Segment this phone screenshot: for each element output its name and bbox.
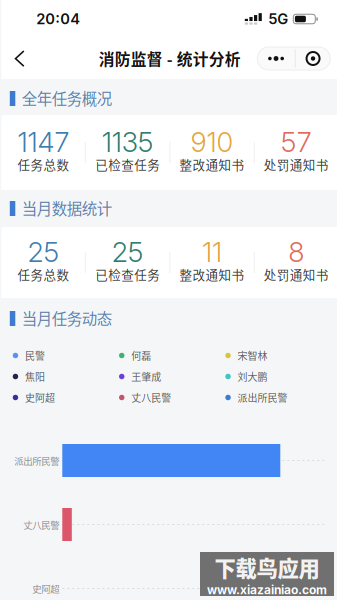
button[interactable]: More options <box>257 47 330 70</box>
staticText: 丈八民警 <box>23 518 59 531</box>
staticText: 任务总数 <box>17 265 69 283</box>
staticText: 处罚通知书 <box>264 155 329 173</box>
staticText: 刘大鹏 <box>238 369 268 384</box>
staticText: 8 <box>288 236 304 269</box>
staticText: 已检查任务 <box>95 155 160 173</box>
staticText: 焦阳 <box>25 369 45 384</box>
staticText: 25 <box>27 236 59 269</box>
staticText: www.xiazainiao.com <box>207 583 327 597</box>
staticText: 派出所民警 <box>238 390 288 405</box>
staticText: 当月数据统计 <box>22 197 112 219</box>
button[interactable]: Back <box>1 39 41 78</box>
staticText: 1147 <box>17 126 69 159</box>
staticText: 何磊 <box>131 348 151 363</box>
staticText: 史阿超 <box>32 582 59 595</box>
staticText: 整改通知书 <box>179 265 244 283</box>
staticText: 民警 <box>25 348 45 363</box>
staticText: 消防监督 - 统计分析 <box>99 47 241 70</box>
staticText: 已检查任务 <box>95 265 160 283</box>
staticText: 处罚通知书 <box>264 265 329 283</box>
staticText: 57 <box>281 126 312 159</box>
staticText: 1135 <box>102 126 154 159</box>
staticText: 20:04 <box>36 10 80 28</box>
staticText: 宋智林 <box>238 348 268 363</box>
staticText: 下载鸟应用 <box>214 552 319 583</box>
staticText: 5G <box>268 10 288 28</box>
staticText: 派出所民警 <box>14 454 59 467</box>
staticText: 当月任务动态 <box>22 307 112 329</box>
staticText: 整改通知书 <box>179 155 244 173</box>
staticText: 史阿超 <box>25 390 55 405</box>
staticText: 任务总数 <box>17 155 69 173</box>
staticText: 910 <box>190 126 233 159</box>
staticText: 全年任务概况 <box>22 87 112 109</box>
staticText: 25 <box>112 236 144 269</box>
staticText: 王肇成 <box>131 369 161 384</box>
staticText: 11 <box>202 236 222 269</box>
staticText: 丈八民警 <box>131 390 171 405</box>
